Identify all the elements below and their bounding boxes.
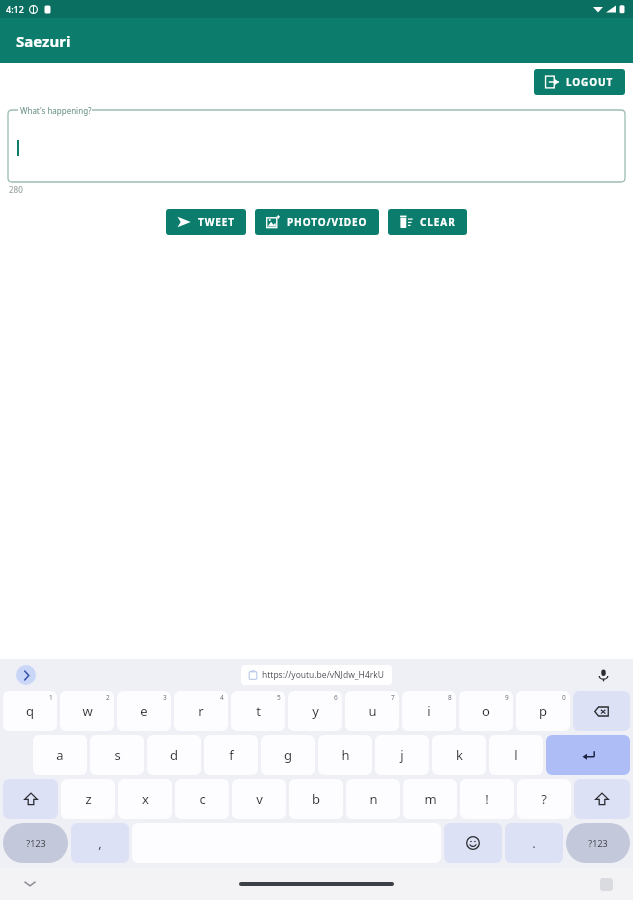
button[interactable]: ?123 <box>3 823 68 863</box>
staticText: c <box>199 790 206 808</box>
button[interactable]: Hide keyboard <box>22 876 38 892</box>
staticText: ?123 <box>26 837 46 849</box>
staticText: p <box>539 702 547 720</box>
staticText: l <box>514 746 518 764</box>
button[interactable]: r <box>174 691 228 731</box>
staticText: 280 <box>9 184 23 195</box>
button[interactable]: f <box>204 735 258 775</box>
button[interactable]: LOGOUT <box>534 69 625 95</box>
staticText: v <box>256 790 263 808</box>
staticText: h <box>341 746 350 764</box>
button[interactable]: o <box>459 691 513 731</box>
button[interactable]: l <box>489 735 543 775</box>
staticText: f <box>229 746 234 764</box>
button[interactable]: TWEET <box>166 209 246 235</box>
staticText: u <box>368 702 377 720</box>
button[interactable]: z <box>61 779 115 819</box>
staticText: 4:12 <box>6 3 24 15</box>
staticText: What's happening? <box>20 105 92 116</box>
button[interactable]: What's happening? <box>8 104 625 182</box>
staticText: 3 <box>163 693 167 702</box>
staticText: https://youtu.be/vNJdw_H4rkU <box>262 669 385 681</box>
button[interactable]: c <box>175 779 229 819</box>
button[interactable]: p <box>516 691 570 731</box>
button[interactable]: https://youtu.be/vNJdw_H4rkU <box>241 665 392 685</box>
button[interactable]: PHOTO/VIDEO <box>255 209 379 235</box>
staticText: PHOTO/VIDEO <box>287 215 368 229</box>
button[interactable]: m <box>403 779 457 819</box>
button[interactable]: ? <box>517 779 571 819</box>
button[interactable]: Voice input <box>593 665 613 685</box>
button[interactable]: a <box>33 735 87 775</box>
staticText: a <box>56 746 64 764</box>
button[interactable]: y <box>288 691 342 731</box>
staticText: j <box>400 746 404 764</box>
staticText: 8 <box>448 693 452 702</box>
staticText: r <box>198 702 204 720</box>
staticText: ? <box>541 790 547 808</box>
button[interactable]: b <box>289 779 343 819</box>
staticText: . <box>532 834 536 852</box>
button[interactable]: Backspace <box>573 691 630 731</box>
button[interactable]: x <box>118 779 172 819</box>
button[interactable]: . <box>505 823 563 863</box>
staticText: k <box>456 746 463 764</box>
button[interactable]: ?123 <box>566 823 630 863</box>
staticText: ! <box>485 790 489 808</box>
staticText: , <box>98 834 102 852</box>
staticText: o <box>482 702 490 720</box>
staticText: m <box>424 790 437 808</box>
staticText: 7 <box>391 693 395 702</box>
staticText: n <box>369 790 378 808</box>
button[interactable]: j <box>375 735 429 775</box>
staticText: g <box>284 746 292 764</box>
button[interactable]: Shift <box>574 779 630 819</box>
button[interactable]: Shift <box>3 779 58 819</box>
staticText: 2 <box>106 693 110 702</box>
button[interactable]: , <box>71 823 129 863</box>
button[interactable]: i <box>402 691 456 731</box>
button[interactable]: d <box>147 735 201 775</box>
button[interactable]: g <box>261 735 315 775</box>
staticText: t <box>256 702 261 720</box>
staticText: w <box>82 702 93 720</box>
staticText: y <box>312 702 319 720</box>
staticText: 9 <box>505 693 509 702</box>
button[interactable]: Enter <box>546 735 630 775</box>
button[interactable]: Switch keyboard <box>600 878 613 891</box>
staticText: 1 <box>49 693 53 702</box>
button[interactable]: w <box>60 691 114 731</box>
staticText: x <box>142 790 149 808</box>
staticText: e <box>140 702 148 720</box>
button[interactable]: v <box>232 779 286 819</box>
staticText: q <box>26 702 34 720</box>
staticText: CLEAR <box>420 215 456 229</box>
button[interactable]: t <box>231 691 285 731</box>
button[interactable]: h <box>318 735 372 775</box>
staticText: b <box>312 790 320 808</box>
staticText: 4 <box>220 693 224 702</box>
button[interactable]: q <box>3 691 57 731</box>
button[interactable]: s <box>90 735 144 775</box>
staticText: Saezuri <box>16 31 71 51</box>
button[interactable]: k <box>432 735 486 775</box>
staticText: z <box>85 790 92 808</box>
button[interactable]: n <box>346 779 400 819</box>
staticText: 6 <box>334 693 338 702</box>
staticText: TWEET <box>198 215 235 229</box>
staticText: i <box>427 702 431 720</box>
staticText: 0 <box>562 693 566 702</box>
staticText: LOGOUT <box>566 75 614 89</box>
staticText: 5 <box>277 693 281 702</box>
button[interactable]: e <box>117 691 171 731</box>
button[interactable]: ! <box>460 779 514 819</box>
button[interactable]: Expand suggestions <box>16 665 36 685</box>
button[interactable]: Emoji <box>444 823 502 863</box>
staticText: ?123 <box>588 837 608 849</box>
staticText: d <box>170 746 178 764</box>
button[interactable]: u <box>345 691 399 731</box>
staticText: s <box>114 746 121 764</box>
button[interactable]: CLEAR <box>388 209 467 235</box>
